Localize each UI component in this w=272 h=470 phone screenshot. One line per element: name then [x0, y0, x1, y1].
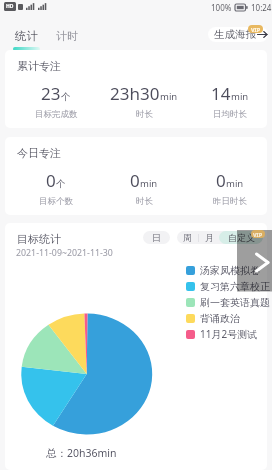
- staticText: 11月2号测试: [200, 327, 258, 341]
- staticText: 目标个数: [39, 196, 73, 207]
- staticText: 总：20h36min: [46, 446, 117, 460]
- button[interactable]: 月: [199, 231, 219, 244]
- button[interactable]: 计时: [56, 29, 78, 43]
- staticText: 日: [152, 232, 161, 243]
- staticText: 汤家凤模拟卷: [200, 264, 260, 277]
- staticText: min: [231, 90, 249, 103]
- staticText: 统计: [15, 29, 38, 43]
- staticText: 昨日时长: [213, 196, 247, 207]
- button[interactable]: 统计: [13, 29, 40, 51]
- staticText: 0: [216, 169, 226, 192]
- staticText: 自定义: [228, 232, 255, 243]
- staticText: 2021-11-09~2021-11-30: [16, 247, 113, 259]
- staticText: VIP: [253, 231, 263, 238]
- staticText: 个: [56, 178, 66, 190]
- staticText: 时长: [136, 109, 153, 120]
- staticText: 累计专注: [17, 59, 61, 73]
- staticText: HD: [6, 3, 14, 10]
- staticText: 日均时长: [213, 109, 247, 120]
- button[interactable]: 日: [143, 231, 170, 244]
- staticText: 23: [41, 82, 61, 105]
- staticText: 目标统计: [17, 232, 61, 246]
- staticText: min: [226, 177, 244, 190]
- staticText: min: [160, 90, 178, 103]
- staticText: 周: [183, 232, 192, 243]
- staticText: 刷一套英语真题: [200, 296, 270, 309]
- staticText: 0: [130, 169, 140, 192]
- staticText: 今日专注: [17, 146, 61, 160]
- staticText: 背诵政治: [200, 312, 240, 325]
- staticText: VIP: [251, 26, 261, 33]
- staticText: 10:24: [251, 2, 272, 13]
- button[interactable]: Next tip: [237, 230, 272, 291]
- staticText: 生成海报: [214, 28, 256, 41]
- staticText: 月: [205, 232, 214, 243]
- staticText: 23h30: [110, 82, 160, 105]
- staticText: 时长: [136, 196, 153, 207]
- staticText: 目标完成数: [35, 109, 78, 120]
- staticText: 个: [61, 91, 71, 103]
- staticText: 复习第六章校正: [200, 280, 270, 293]
- staticText: 100%: [211, 2, 232, 13]
- staticText: min: [140, 177, 158, 190]
- staticText: 0: [46, 169, 56, 192]
- staticText: 计时: [56, 29, 78, 43]
- button[interactable]: 生成海报: [208, 27, 268, 42]
- staticText: 14: [211, 82, 231, 105]
- button[interactable]: 自定义: [219, 231, 263, 244]
- button[interactable]: 周: [177, 231, 198, 244]
